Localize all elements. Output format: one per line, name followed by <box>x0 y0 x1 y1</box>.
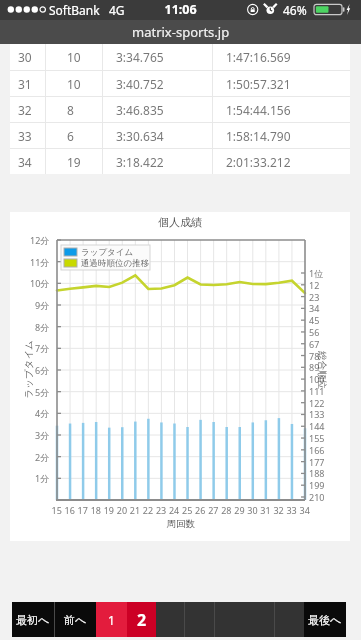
staticText: 8 <box>67 102 74 118</box>
staticText: 10 <box>67 49 81 65</box>
staticText: 10 <box>67 76 81 92</box>
staticText: 最後へ <box>308 613 342 627</box>
button[interactable]: 前へ <box>55 602 96 637</box>
staticText: matrix-sports.jp <box>132 23 230 41</box>
staticText: 1:50:57.321 <box>226 76 291 92</box>
staticText: 2:01:33.212 <box>226 154 291 170</box>
staticText: 前へ <box>64 613 87 627</box>
staticText: 1:58:14.790 <box>226 128 291 144</box>
staticText: 3:34.765 <box>116 49 164 65</box>
staticText: 3:46.835 <box>116 102 164 118</box>
other: Alarm <box>264 0 278 14</box>
staticText: 1:47:16.569 <box>226 49 291 65</box>
staticText: 34 <box>18 154 32 170</box>
staticText: 32 <box>18 102 32 118</box>
staticText: 1:54:44.156 <box>226 102 291 118</box>
other: Rotation lock <box>246 0 260 14</box>
staticText: 3:30.634 <box>116 128 164 144</box>
button[interactable]: 最初へ <box>12 602 54 637</box>
button[interactable]: 2 <box>127 602 156 637</box>
staticText: 最初へ <box>16 613 50 627</box>
staticText: 3:18.422 <box>116 154 164 170</box>
staticText: 19 <box>67 154 81 170</box>
staticText: 3:40.752 <box>116 76 164 92</box>
button[interactable]: 1 <box>96 602 127 637</box>
staticText: 30 <box>18 49 32 65</box>
staticText: 31 <box>18 76 32 92</box>
other: Battery 46 percent charging <box>313 0 349 14</box>
staticText: 2 <box>137 609 147 631</box>
staticText: 33 <box>18 128 32 144</box>
button[interactable]: 最後へ <box>304 602 346 637</box>
staticText: 1 <box>108 612 115 628</box>
staticText: 6 <box>67 128 74 144</box>
